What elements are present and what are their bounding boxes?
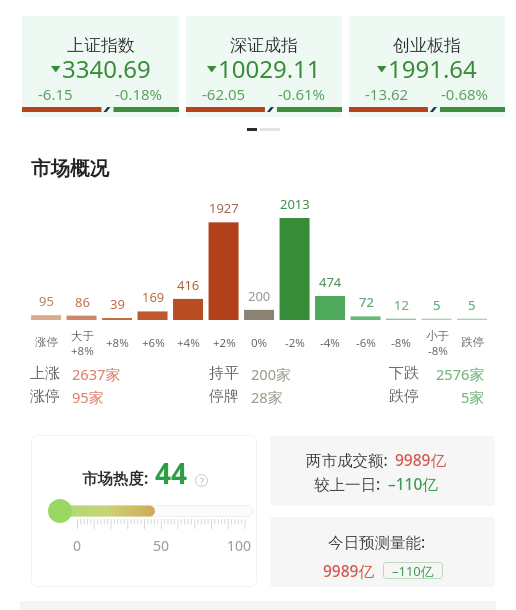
staticText: 深证成指 [230,35,298,56]
button[interactable]: 帮助 [195,474,208,487]
button[interactable]: 市场热度: [31,435,257,587]
staticText: -0.61% [278,84,326,104]
staticText: 86 [75,293,90,311]
staticText: 2013 [280,195,310,213]
staticText: +4% [177,335,200,351]
staticText: -8% [428,343,448,355]
staticText: 下跌 [389,364,419,383]
staticText: -6.15 [38,84,73,104]
staticText: 市场热度: [82,467,149,488]
staticText: 28家 [251,387,283,407]
staticText: 44 [155,454,188,492]
staticText: ? [200,475,204,487]
staticText: 200 [248,287,271,305]
staticText: 上证指数 [67,35,135,56]
staticText: 1927 [209,199,239,217]
staticText: 跌停 [461,335,484,349]
staticText: 今日预测量能: [328,531,426,552]
staticText: 市场概况 [31,156,109,181]
button[interactable]: 深证成指 [186,16,342,117]
staticText: 95家 [72,387,104,407]
staticText: 2637家 [72,364,120,384]
staticText: 停牌 [209,387,239,406]
staticText: 大于 [71,329,94,343]
staticText: -4% [320,335,340,351]
staticText: 涨停 [30,387,60,406]
staticText: -0.68% [441,84,489,104]
staticText: 小于 [426,329,449,343]
staticText: 9989亿 [395,449,446,470]
staticText: 169 [142,288,165,306]
staticText: 72 [359,293,374,311]
button[interactable]: 上涨 [30,364,120,384]
staticText: 50 [153,536,170,555]
staticText: -62.05 [202,84,246,104]
staticText: +6% [142,335,165,351]
staticText: 200家 [251,364,291,384]
staticText: 10029.11 [218,52,321,85]
button[interactable]: 涨停 [30,387,104,407]
staticText: 0% [251,335,268,351]
button[interactable]: 持平 [209,364,291,384]
staticText: 跌停 [389,387,419,406]
button[interactable]: 今日预测量能: [270,517,495,587]
staticText: +8% [71,343,94,355]
button[interactable]: 两市成交额: [270,436,495,506]
staticText: 2576家 [436,364,484,384]
staticText: 涨停 [35,335,58,349]
button[interactable]: 跌停 [389,387,484,407]
staticText: 474 [319,273,342,291]
staticText: -0.18% [115,84,163,104]
staticText: -8% [391,335,411,351]
staticText: 创业板指 [393,35,461,56]
staticText: +2% [213,335,236,351]
staticText: 两市成交额: [306,449,388,470]
staticText: 100 [227,536,252,555]
staticText: 95 [39,292,54,310]
staticText: -13.62 [365,84,409,104]
staticText: 5 [468,296,476,314]
staticText: 12 [394,296,409,314]
button[interactable]: 下跌 [389,364,484,384]
button[interactable]: 停牌 [209,387,283,407]
button[interactable]: 上证指数 [22,16,179,117]
staticText: 持平 [209,364,239,383]
staticText: 1991.64 [388,52,477,85]
staticText: 3340.69 [62,52,151,85]
staticText: 0 [73,536,82,555]
staticText: –110亿 [388,473,438,494]
staticText: 上涨 [30,364,60,383]
staticText: +8% [106,335,129,351]
button[interactable]: 创业板指 [349,16,505,117]
staticText: -6% [356,335,376,351]
staticText: 416 [177,276,200,294]
staticText: –110亿 [392,562,434,579]
staticText: 9989亿 [323,560,374,581]
staticText: 39 [110,295,125,313]
staticText: -2% [285,335,305,351]
staticText: 较上一日: [314,473,381,494]
staticText: 5家 [461,387,484,407]
staticText: 5 [433,296,441,314]
